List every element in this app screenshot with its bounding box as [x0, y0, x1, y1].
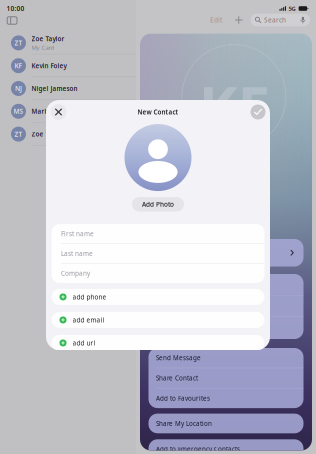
staticText: MS — [13, 107, 23, 116]
button[interactable]: Send Message — [148, 348, 303, 368]
staticText: add email — [72, 316, 104, 324]
button[interactable]: Last name — [51, 244, 264, 264]
staticText: add url — [72, 339, 95, 347]
button[interactable]: add phone — [51, 289, 264, 305]
staticText: Send Message — [156, 354, 201, 362]
button[interactable]: Add to Emergency Contacts — [148, 439, 303, 454]
button[interactable]: ZT — [0, 31, 136, 54]
staticText: Kevin Foley — [31, 61, 66, 70]
staticText: Add to Emergency Contacts — [156, 445, 240, 453]
staticText: Share Contact — [156, 374, 198, 382]
button[interactable]: KF — [0, 54, 136, 77]
staticText: KF — [14, 61, 22, 70]
staticText: My Card — [31, 43, 54, 51]
staticText: First name — [61, 229, 94, 238]
staticText: Last name — [61, 249, 93, 258]
staticText: Add to Favourites — [156, 394, 210, 402]
button[interactable]: Share My Location — [148, 414, 303, 433]
button[interactable]: add email — [51, 312, 264, 328]
button[interactable]: NJ — [0, 77, 136, 100]
button[interactable]: Search — [250, 14, 310, 26]
staticText: Company — [61, 269, 90, 278]
button[interactable]: Add Photo — [132, 197, 184, 212]
staticText: add phone — [72, 293, 106, 301]
button[interactable]: add url — [51, 335, 264, 351]
button[interactable]: Show Sidebar — [4, 14, 21, 27]
staticText: 10:00 — [6, 4, 24, 13]
button[interactable]: New Contact — [231, 13, 246, 26]
staticText: Add Photo — [142, 200, 174, 209]
button[interactable]: Done — [250, 104, 265, 119]
staticText: KF — [198, 66, 269, 146]
button[interactable]: MS — [0, 100, 136, 123]
staticText: Zoe Taylor — [31, 130, 64, 138]
button[interactable]: ZT — [0, 123, 136, 145]
staticText: ZT — [14, 38, 22, 47]
button[interactable]: Company — [51, 264, 264, 283]
button[interactable]: Share Contact — [148, 368, 303, 388]
button[interactable]: More Info — [148, 239, 303, 266]
button[interactable]: Cancel — [50, 104, 66, 120]
button[interactable]: Edit — [206, 13, 226, 26]
staticText: Maria Ruiz — [31, 107, 65, 115]
staticText: Edit — [210, 16, 222, 24]
staticText: Nigel Jameson — [31, 84, 77, 93]
staticText: 5G — [288, 4, 295, 12]
staticText: NJ — [15, 84, 22, 93]
staticText: ZT — [14, 130, 22, 139]
staticText: Search — [264, 16, 286, 24]
staticText: Share My Location — [156, 419, 212, 428]
staticText: New Contact — [137, 108, 178, 116]
button[interactable]: Add to Favourites — [148, 388, 303, 408]
button[interactable]: First name — [51, 224, 264, 244]
staticText: Zoe Taylor — [31, 34, 64, 43]
